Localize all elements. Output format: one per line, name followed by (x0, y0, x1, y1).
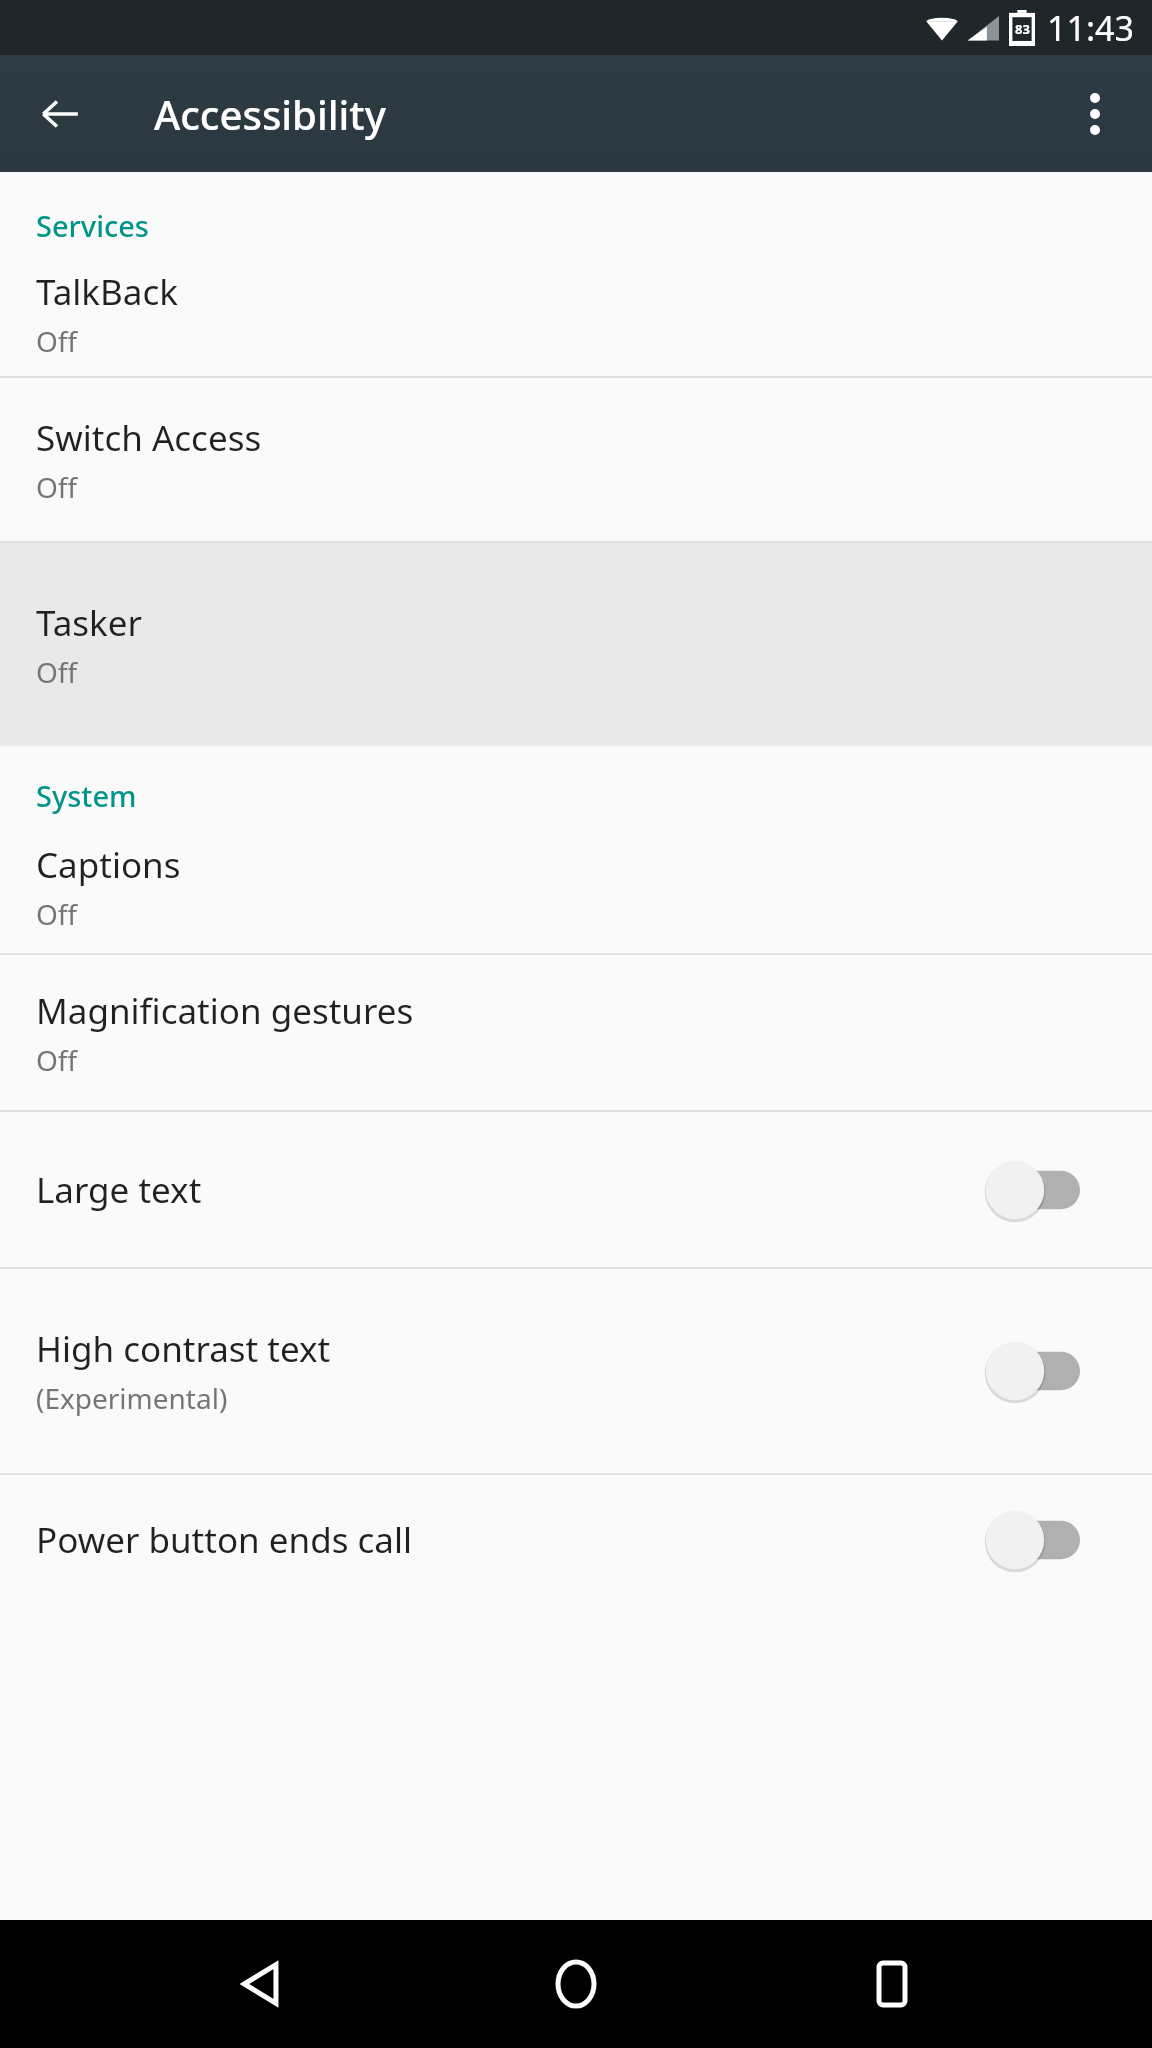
button[interactable]: Large text (0, 1112, 1152, 1267)
staticText: Off (36, 895, 78, 933)
button[interactable]: Toggle (984, 1159, 1080, 1221)
staticText: Large text (36, 1166, 202, 1214)
staticText: System (36, 776, 137, 815)
staticText: TalkBack (36, 268, 178, 316)
button[interactable]: More options (1058, 77, 1132, 151)
staticText: Magnification gestures (36, 987, 414, 1035)
button[interactable]: Magnification gestures (0, 955, 1152, 1110)
staticText: Services (36, 206, 149, 245)
button[interactable]: Recent apps (837, 1929, 947, 2039)
button[interactable]: Toggle (984, 1340, 1080, 1402)
staticText: Off (36, 1041, 78, 1079)
button[interactable]: Home (521, 1929, 631, 2039)
button[interactable]: Captions (0, 821, 1152, 953)
staticText: Off (36, 468, 78, 506)
staticText: Accessibility (154, 87, 386, 141)
staticText: High contrast text (36, 1325, 331, 1373)
button[interactable]: Power button ends call (0, 1475, 1152, 1605)
staticText: Power button ends call (36, 1516, 413, 1564)
button[interactable]: TalkBack (0, 251, 1152, 376)
button[interactable]: Tasker (0, 543, 1152, 746)
staticText: 11:43 (1047, 5, 1134, 51)
staticText: Off (36, 653, 78, 691)
staticText: Captions (36, 841, 181, 889)
button[interactable]: Back (206, 1929, 316, 2039)
staticText: Off (36, 322, 78, 360)
staticText: 83 (1015, 20, 1030, 38)
staticText: Switch Access (36, 414, 262, 462)
staticText: (Experimental) (36, 1379, 228, 1417)
button[interactable]: Back (26, 80, 94, 148)
button[interactable]: Toggle (984, 1509, 1080, 1571)
staticText: Tasker (36, 599, 142, 647)
button[interactable]: High contrast text (0, 1269, 1152, 1473)
button[interactable]: Switch Access (0, 378, 1152, 541)
